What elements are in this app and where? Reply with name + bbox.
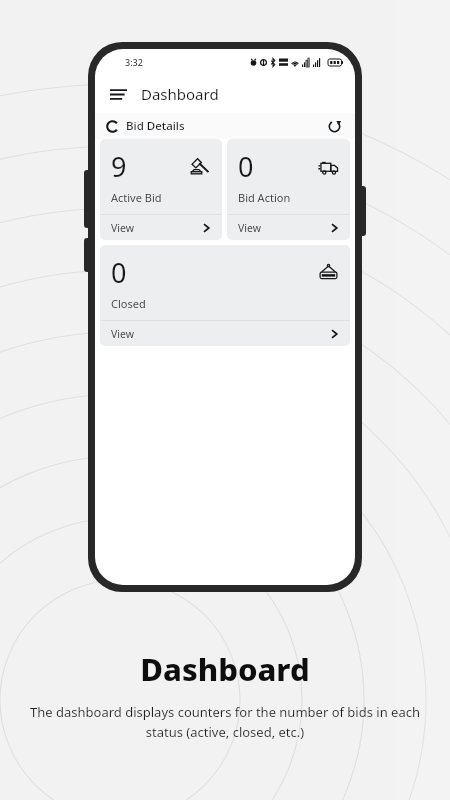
button[interactable]: View <box>100 321 350 346</box>
staticText: Dashboard <box>141 84 219 104</box>
button[interactable]: 0 <box>100 245 350 346</box>
staticText: Dashboard <box>140 648 310 690</box>
staticText: The dashboard displays counters for the … <box>26 703 424 741</box>
staticText: View <box>111 327 134 341</box>
staticText: Bid Action <box>238 190 291 205</box>
button[interactable]: Open navigation menu <box>106 82 130 106</box>
button[interactable]: 9 <box>100 139 222 240</box>
staticText: Active Bid <box>111 190 162 205</box>
staticText: 0 <box>238 148 254 185</box>
staticText: 0 <box>111 254 127 291</box>
staticText: View <box>111 221 134 235</box>
staticText: 9 <box>111 148 127 185</box>
button[interactable]: Refresh <box>324 116 344 136</box>
button[interactable]: View <box>100 215 222 240</box>
staticText: Bid Details <box>126 118 185 134</box>
staticText: View <box>238 221 261 235</box>
staticText: 3:32 <box>125 56 143 68</box>
button[interactable]: View <box>227 215 350 240</box>
button[interactable]: 0 <box>227 139 350 240</box>
staticText: Closed <box>111 296 146 311</box>
